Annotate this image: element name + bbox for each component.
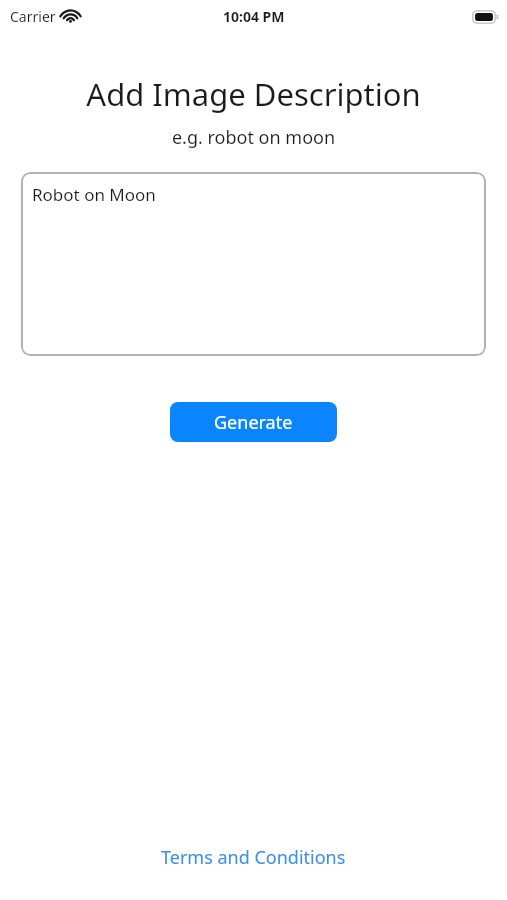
staticText: Add Image Description: [0, 73, 507, 115]
other: Battery full: [472, 10, 499, 24]
staticText: e.g. robot on moon: [0, 125, 507, 150]
staticText: Generate: [214, 410, 293, 435]
staticText: Terms and Conditions: [161, 845, 346, 870]
other: Wi-Fi signal: [62, 10, 79, 23]
button[interactable]: Terms and Conditions: [149, 839, 358, 876]
staticText: Robot on Moon: [32, 183, 156, 206]
button[interactable]: Robot on Moon: [21, 172, 486, 356]
staticText: Carrier: [10, 7, 56, 26]
staticText: 10:04 PM: [223, 7, 285, 26]
button[interactable]: Generate: [170, 402, 337, 442]
